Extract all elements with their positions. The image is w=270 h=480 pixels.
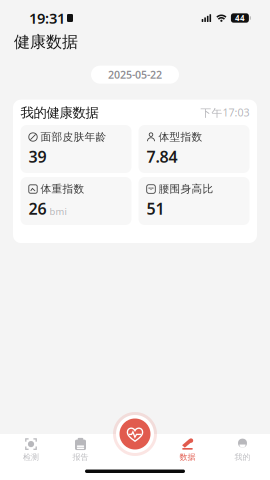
staticText: 体型指数 <box>158 130 202 144</box>
staticText: 39 <box>28 146 46 167</box>
staticText: 腰围身高比 <box>158 182 213 196</box>
staticText: 报告 <box>72 452 88 462</box>
staticText: 面部皮肤年龄 <box>40 130 106 144</box>
staticText: 健康数据 <box>14 32 78 52</box>
staticText: 我的 <box>234 452 250 462</box>
button[interactable]: 数据 <box>160 435 215 467</box>
button[interactable]: 我的 <box>215 435 270 467</box>
staticText: 2025-05-22 <box>108 68 162 82</box>
staticText: 19:31 <box>29 8 65 28</box>
staticText: 检测 <box>23 452 39 462</box>
staticText: 数据 <box>179 452 195 462</box>
staticText: 我的健康数据 <box>20 105 98 121</box>
staticText: 26 <box>28 198 46 219</box>
staticText: 下午17:03 <box>200 105 249 120</box>
staticText: 7.84 <box>146 146 177 167</box>
staticText: 44 <box>235 13 245 23</box>
staticText: 体重指数 <box>40 182 84 196</box>
button[interactable]: Measure <box>112 411 158 457</box>
staticText: bmi <box>49 205 66 218</box>
button[interactable]: 报告 <box>62 435 99 467</box>
button[interactable]: 检测 <box>0 435 62 467</box>
staticText: 51 <box>146 198 164 219</box>
